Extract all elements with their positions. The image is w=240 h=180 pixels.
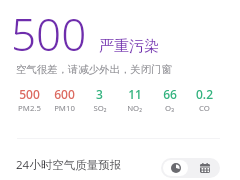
button[interactable]: 66	[152, 86, 187, 114]
staticText: 500	[11, 4, 87, 64]
staticText: PM2.5	[18, 103, 41, 114]
staticText: 0.2	[196, 86, 213, 102]
staticText: PM10	[54, 103, 75, 114]
staticText: NO₂	[127, 103, 142, 114]
staticText: 500	[19, 86, 40, 102]
button[interactable]: 11	[117, 86, 152, 114]
button[interactable]: Hourly forecast	[163, 160, 188, 176]
staticText: 11	[128, 86, 142, 102]
button[interactable]: 3	[82, 86, 117, 114]
staticText: 66	[163, 86, 177, 102]
button[interactable]: Daily forecast	[190, 158, 220, 178]
staticText: 3	[96, 86, 103, 102]
button[interactable]: 500	[12, 86, 47, 114]
staticText: CO	[199, 103, 210, 114]
staticText: 空气很差，请减少外出，关闭门窗	[16, 63, 172, 76]
staticText: 600	[54, 86, 75, 102]
staticText: SO₂	[93, 103, 107, 114]
button[interactable]	[0, 0, 240, 82]
button[interactable]: 600	[47, 86, 82, 114]
staticText: O₃	[165, 103, 174, 114]
button[interactable]: 0.2	[187, 86, 222, 114]
staticText: 严重污染	[99, 37, 159, 56]
button[interactable]: 24小时空气质量预报	[16, 157, 122, 173]
